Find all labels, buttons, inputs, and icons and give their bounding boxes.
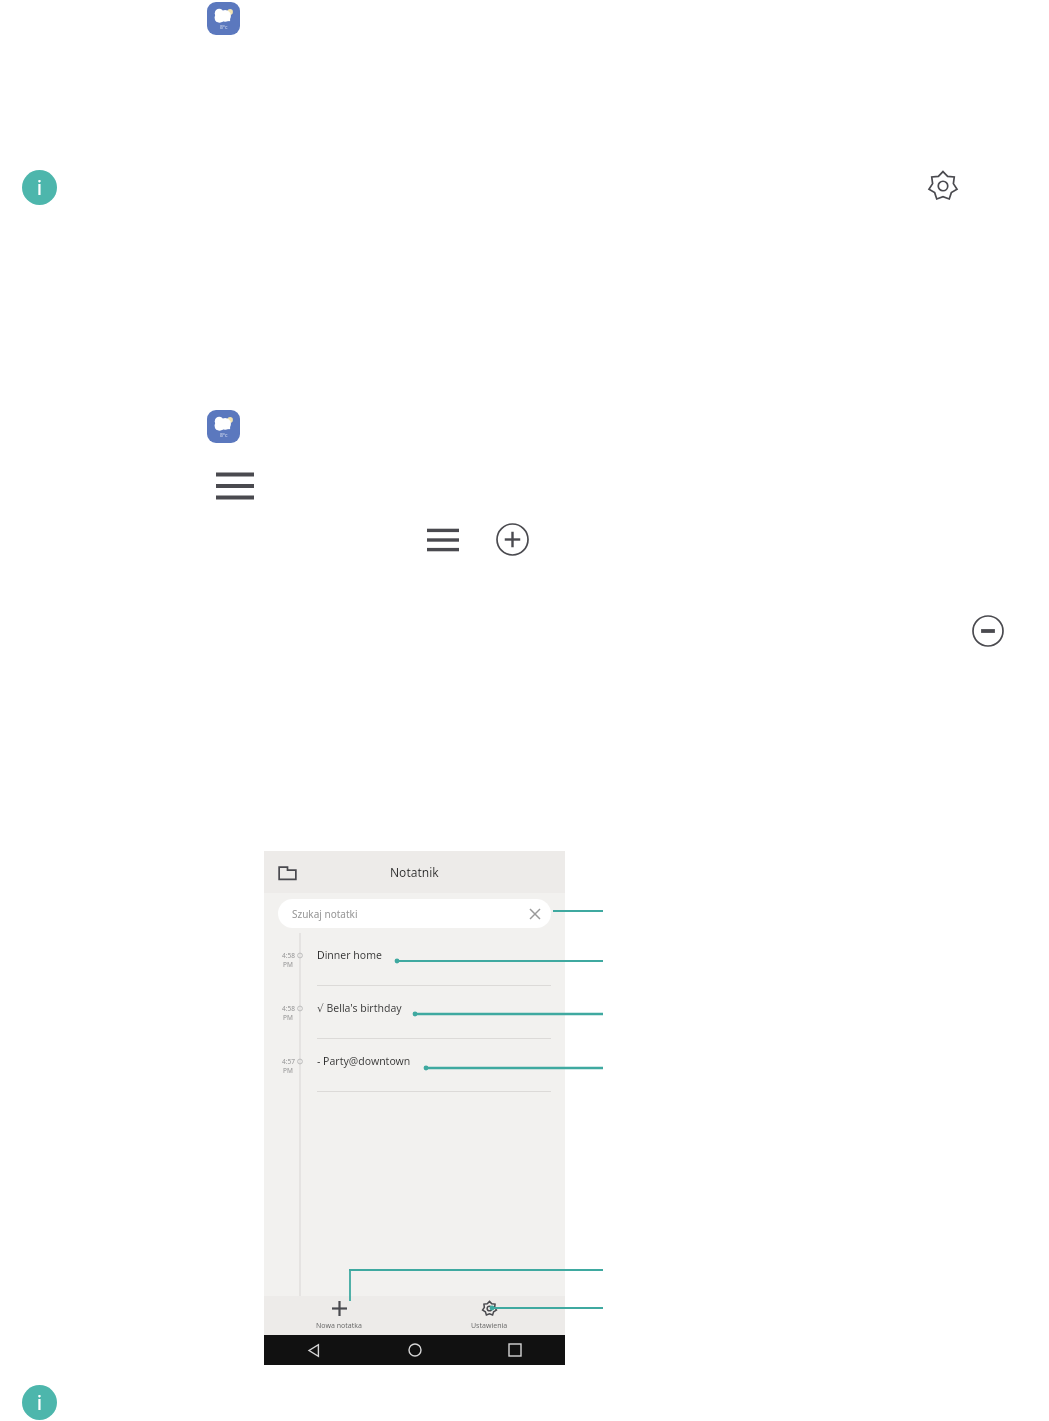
staticText: Szukaj notatki [292,907,358,921]
button[interactable]: Ustawienia [414,1296,565,1335]
button[interactable]: Nowa notatka [264,1296,414,1335]
button[interactable]: Home [365,1335,465,1365]
button[interactable]: Remove [972,615,1004,647]
staticText: PM [283,960,293,969]
button[interactable]: Clear [530,909,540,919]
button[interactable]: Folder [278,863,297,882]
button[interactable]: Szukaj notatki [278,899,551,928]
button[interactable]: Information [22,1385,57,1420]
staticText: 4:57 [282,1057,295,1066]
button[interactable]: Information [22,170,57,205]
staticText: i [37,1390,42,1416]
staticText: 4:58 [282,951,295,960]
staticText: √ Bella's birthday [317,1001,402,1015]
staticText: 8°c [220,24,228,31]
button[interactable]: Recents [465,1335,565,1365]
staticText: 4:58 [282,1004,295,1013]
button[interactable]: 4:57 [264,1039,565,1092]
staticText: Nowa notatka [316,1321,362,1331]
staticText: - Party@downtown [317,1054,411,1068]
staticText: i [37,175,42,201]
button[interactable]: Menu [427,528,459,552]
button[interactable]: Settings [927,170,959,202]
staticText: Ustawienia [471,1321,508,1331]
button[interactable]: Weather [207,2,240,35]
staticText: 8°c [220,432,228,439]
button[interactable]: 4:58 [264,986,565,1039]
button[interactable]: Weather [207,410,240,443]
staticText: Dinner home [317,948,382,962]
button[interactable]: Back [264,1335,365,1365]
button[interactable]: 4:58 [264,933,565,986]
button[interactable]: Add [496,523,529,556]
staticText: Notatnik [390,864,439,880]
button[interactable]: Menu [216,471,254,501]
staticText: PM [283,1066,293,1075]
staticText: PM [283,1013,293,1022]
